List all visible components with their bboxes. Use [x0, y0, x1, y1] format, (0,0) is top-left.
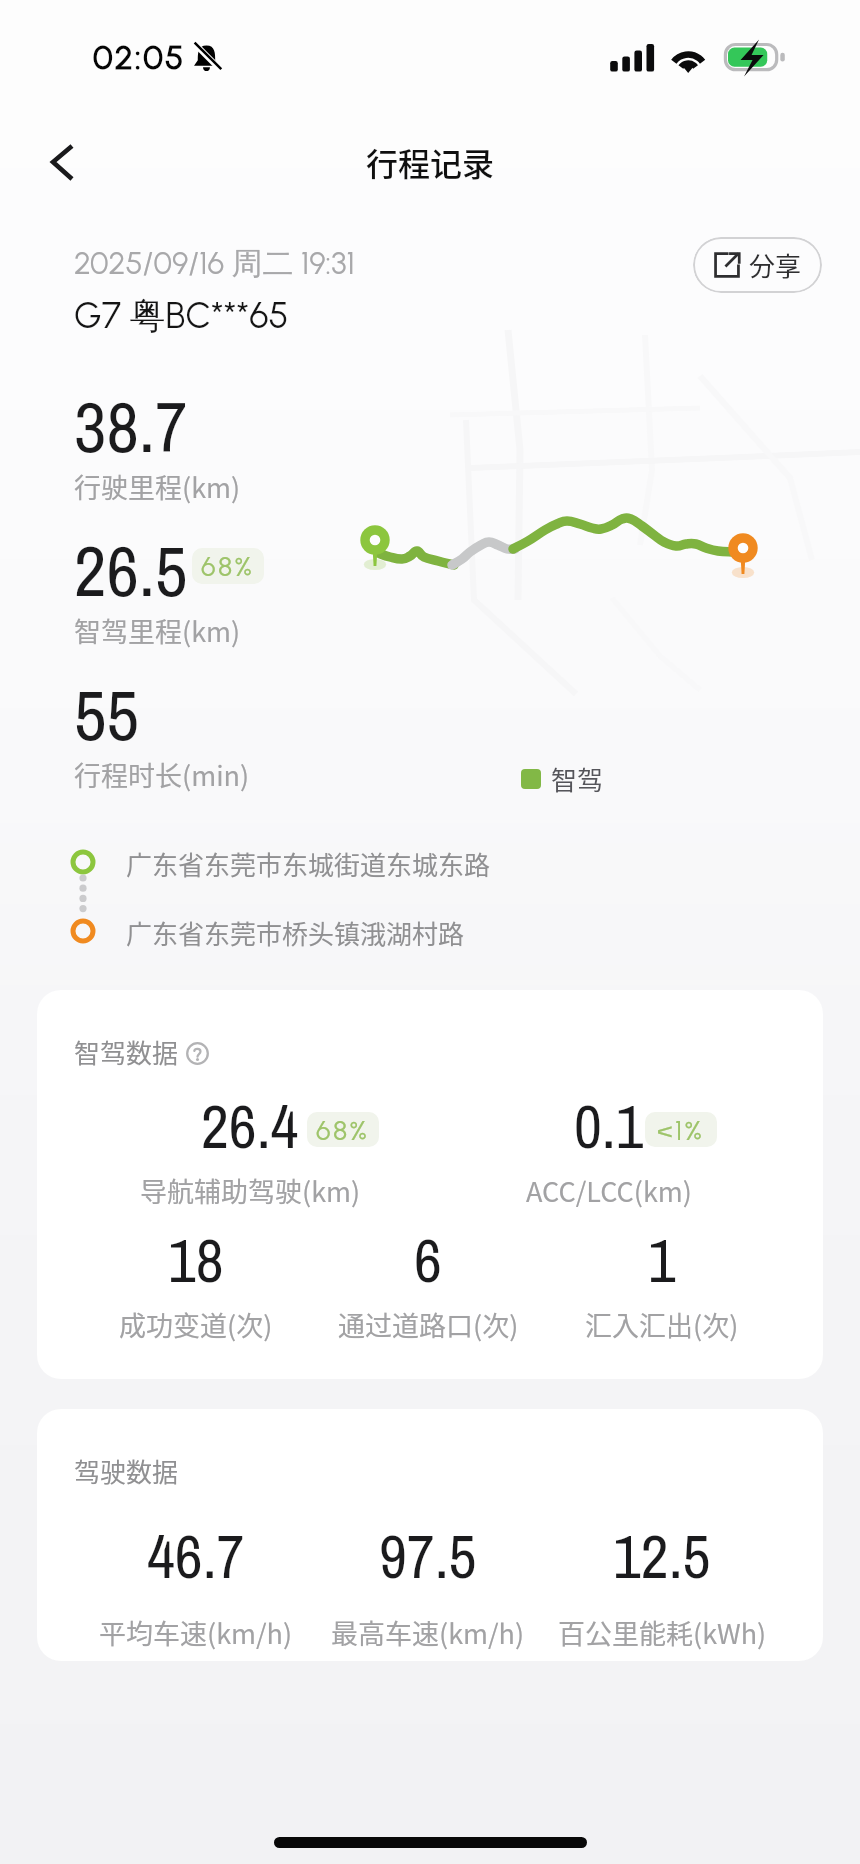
staticText: 百公里能耗(kWh) — [558, 1613, 767, 1652]
staticText: 广东省东莞市东城街道东城东路 — [126, 845, 491, 883]
staticText: 55 — [74, 667, 139, 763]
staticText: 行驶里程(km) — [74, 467, 241, 506]
staticText: 26.5 — [74, 523, 188, 619]
staticText: 广东省东莞市桥头镇涐湖村路 — [126, 914, 465, 952]
staticText: 26.4 — [201, 1085, 299, 1167]
staticText: ACC/LCC(km) — [526, 1171, 692, 1210]
staticText: 汇入汇出(次) — [585, 1305, 739, 1344]
staticText: 12.5 — [613, 1515, 711, 1597]
staticText: 97.5 — [379, 1515, 477, 1597]
staticText: 智驾 — [551, 760, 604, 798]
staticText: 智驾里程(km) — [74, 611, 241, 650]
staticText: 智驾数据 — [74, 1033, 179, 1071]
staticText: 68% — [316, 1114, 370, 1146]
staticText: 02:05 — [93, 38, 186, 78]
staticText: 行程时长(min) — [74, 755, 250, 794]
staticText: 18 — [168, 1219, 224, 1301]
staticText: 通过道路口(次) — [338, 1305, 519, 1344]
button[interactable]: Back — [29, 129, 95, 195]
staticText: 2025/09/16 周二 19:31 — [74, 244, 355, 283]
staticText: 68% — [201, 550, 255, 582]
staticText: 38.7 — [74, 379, 188, 475]
staticText: 46.7 — [147, 1515, 245, 1597]
staticText: 行程记录 — [366, 139, 495, 185]
staticText: 6 — [414, 1219, 442, 1301]
staticText: 驾驶数据 — [74, 1452, 179, 1490]
staticText: 分享 — [749, 246, 802, 284]
button[interactable]: 分享 — [693, 237, 822, 293]
staticText: <1% — [657, 1114, 705, 1146]
staticText: G7 粤BC***65 — [74, 293, 289, 338]
staticText: 导航辅助驾驶(km) — [140, 1171, 361, 1210]
staticText: 平均车速(km/h) — [99, 1613, 293, 1652]
staticText: 成功变道(次) — [119, 1305, 273, 1344]
staticText: 最高车速(km/h) — [331, 1613, 525, 1652]
staticText: 0.1 — [574, 1085, 644, 1167]
staticText: 1 — [648, 1219, 676, 1301]
